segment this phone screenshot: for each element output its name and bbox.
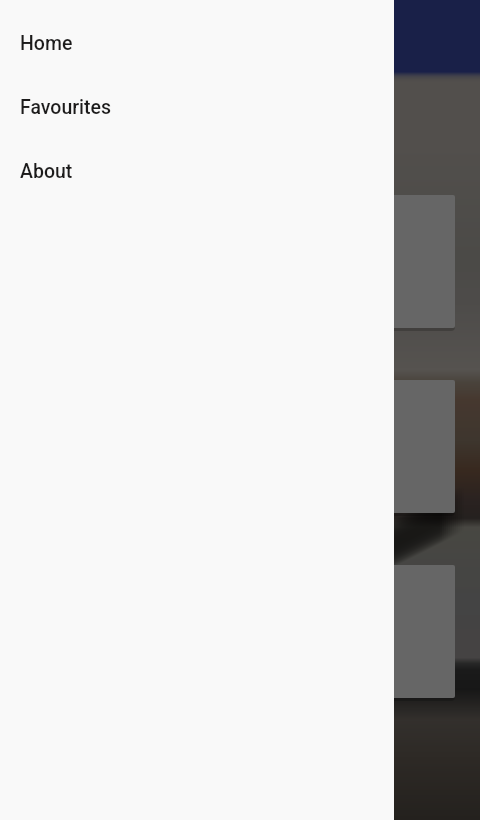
button[interactable]: About xyxy=(0,139,394,203)
button[interactable]: Sourdough loaf xyxy=(25,195,455,328)
staticText: Home xyxy=(20,32,73,55)
staticText: About xyxy=(20,160,73,183)
button[interactable]: Home xyxy=(0,11,394,75)
button[interactable]: Cinnamon rolls xyxy=(25,380,455,513)
button[interactable]: Walnut banana bread xyxy=(25,565,455,698)
button[interactable]: Favourites xyxy=(0,75,394,139)
staticText: Favourites xyxy=(20,96,112,119)
